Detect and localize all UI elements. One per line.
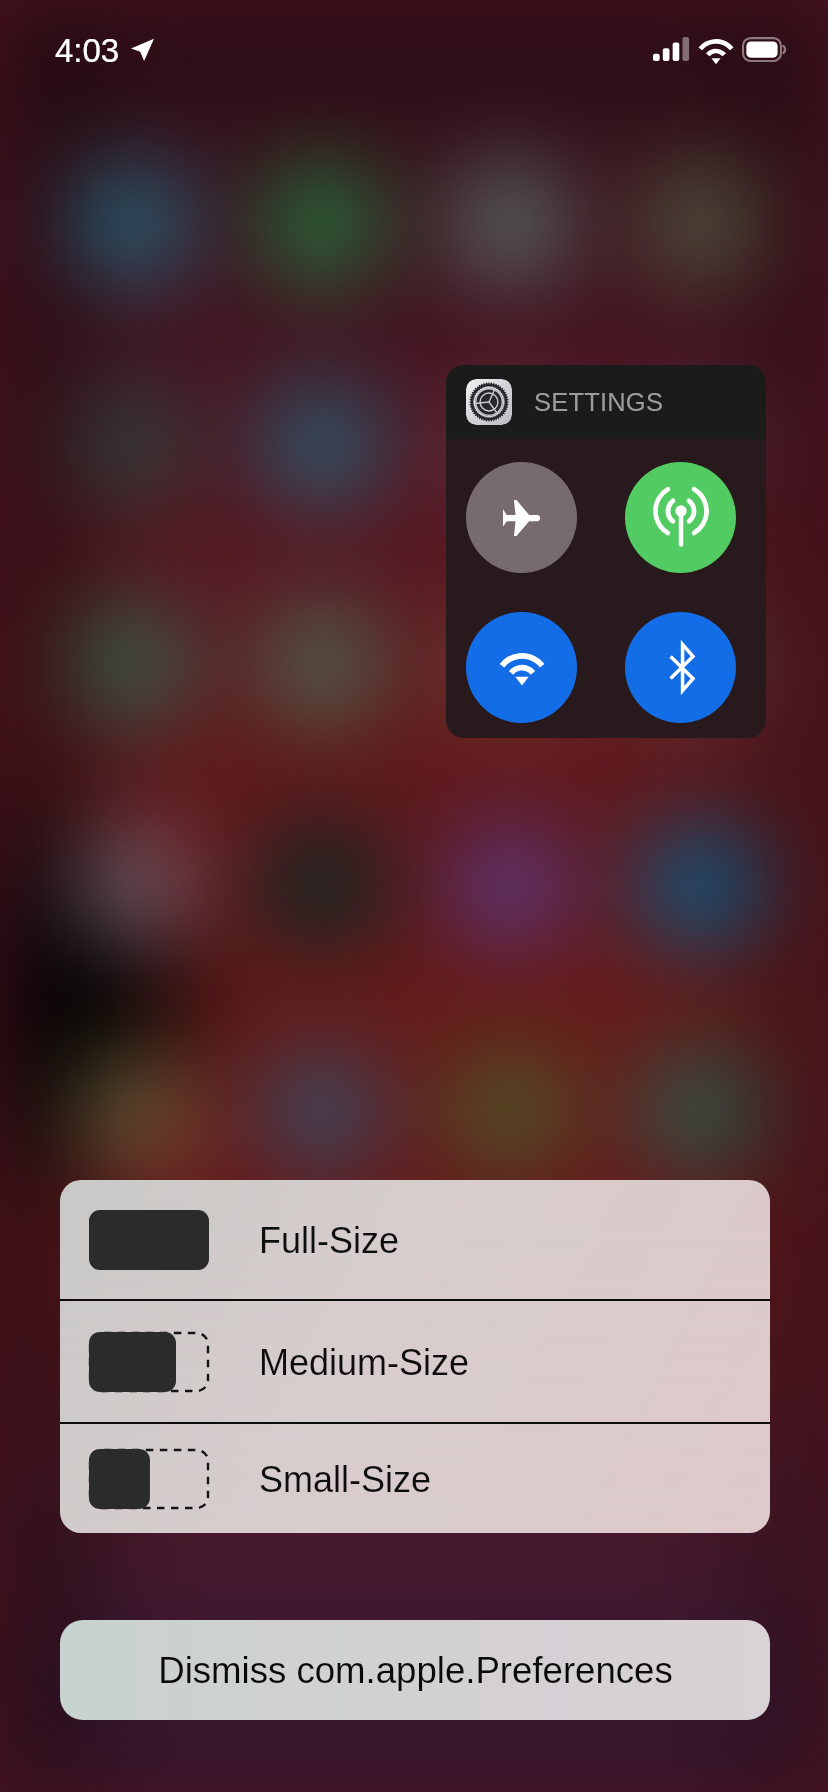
button[interactable]: Airplane mode <box>466 462 577 573</box>
staticText: Dismiss com.apple.Preferences <box>158 1650 673 1691</box>
button[interactable]: Dismiss com.apple.Preferences <box>60 1620 770 1720</box>
button[interactable]: Wi-Fi <box>466 612 577 723</box>
button[interactable]: Bluetooth <box>625 612 736 723</box>
staticText: Medium-Size <box>259 1342 470 1382</box>
button[interactable]: Full-Size <box>60 1180 770 1299</box>
button[interactable]: SETTINGS <box>446 365 766 439</box>
staticText: Small-Size <box>259 1459 432 1499</box>
button[interactable]: Medium-Size <box>60 1301 770 1422</box>
staticText: 4:03 <box>55 32 120 69</box>
staticText: SETTINGS <box>534 388 664 416</box>
button[interactable]: Small-Size <box>60 1424 770 1533</box>
button[interactable]: Cellular data <box>625 462 736 573</box>
staticText: Full-Size <box>259 1220 400 1260</box>
